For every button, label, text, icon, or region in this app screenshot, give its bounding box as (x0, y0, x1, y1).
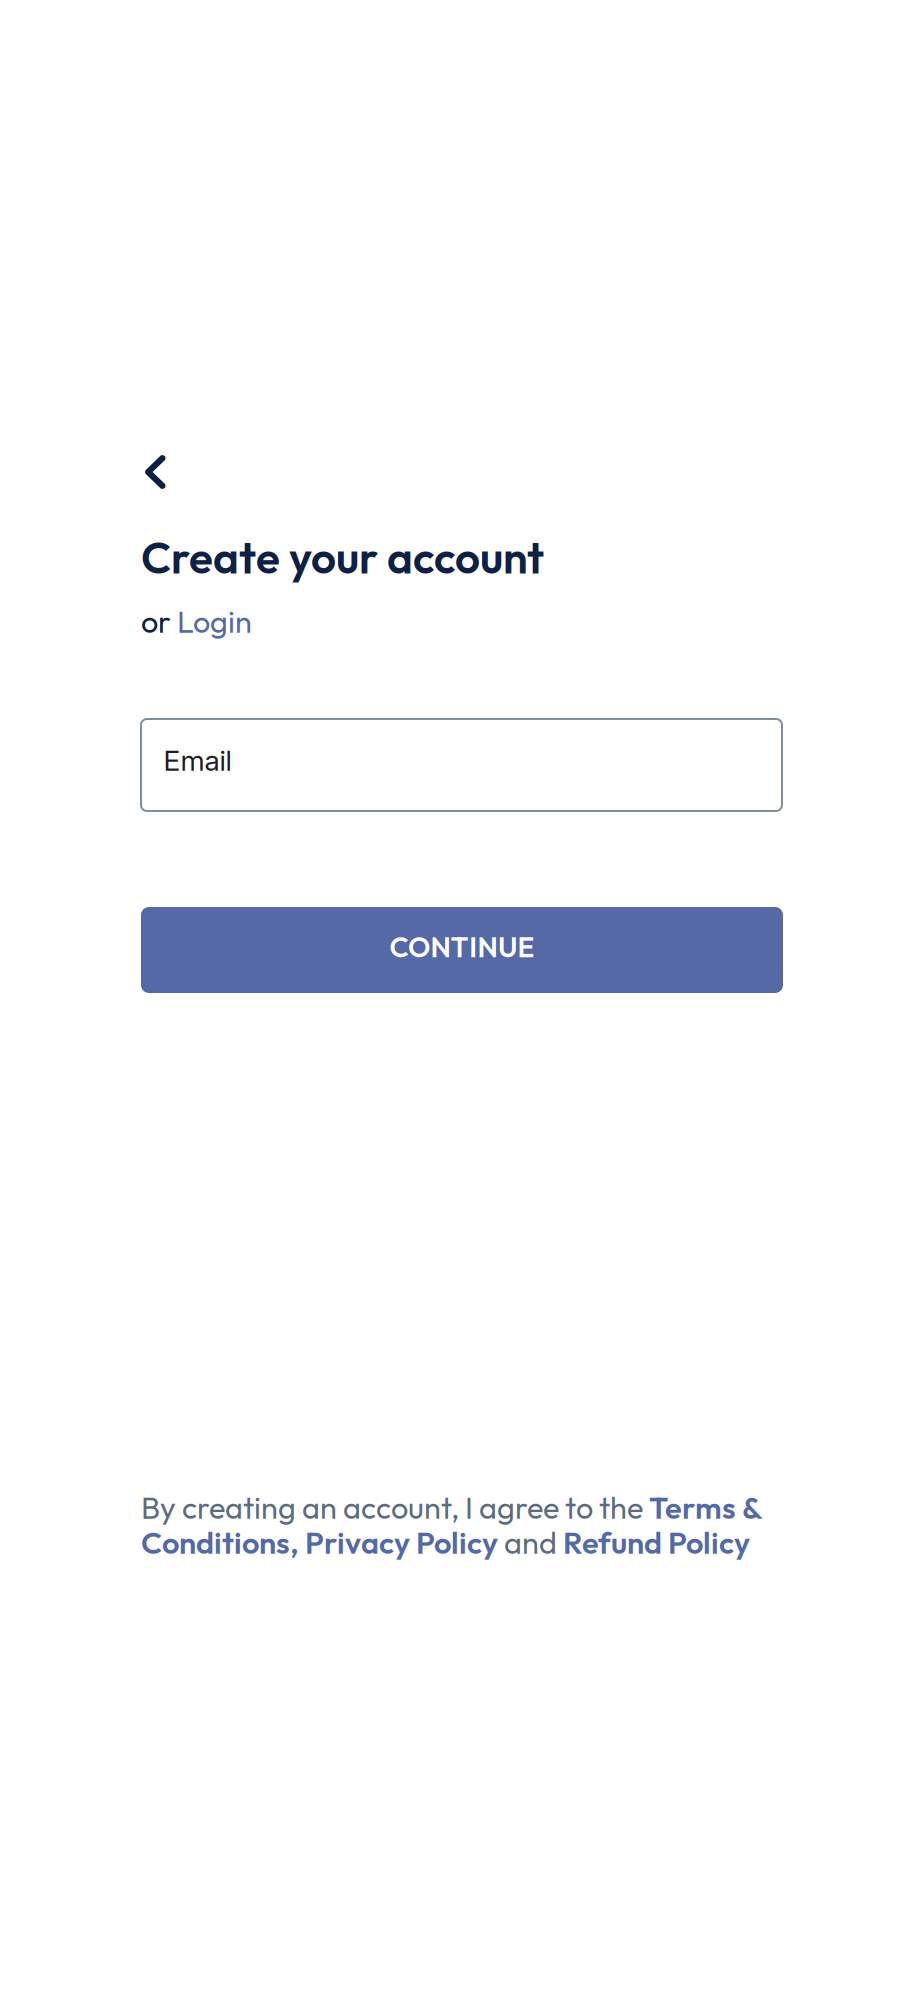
staticText: Conditions, (141, 1523, 299, 1562)
staticText: Refund Policy (563, 1523, 750, 1562)
button[interactable]: CONTINUE (141, 907, 783, 993)
staticText: By creating an account, I agree to the (141, 1488, 649, 1527)
staticText: Login (177, 602, 252, 641)
button[interactable]: Terms & (649, 1488, 763, 1527)
button[interactable]: Privacy Policy (305, 1523, 498, 1562)
button[interactable]: Conditions, (141, 1523, 299, 1562)
staticText: or (141, 602, 177, 641)
button[interactable]: Email (141, 719, 782, 811)
staticText: and (498, 1523, 563, 1562)
button[interactable]: Login (177, 602, 252, 641)
staticText: CONTINUE (390, 929, 534, 965)
button[interactable]: Refund Policy (563, 1523, 750, 1562)
staticText: Terms & (649, 1488, 763, 1527)
staticText: Create your account (141, 530, 544, 585)
button[interactable]: Back (141, 444, 197, 500)
staticText: Email (163, 744, 231, 777)
staticText: Privacy Policy (305, 1523, 498, 1562)
